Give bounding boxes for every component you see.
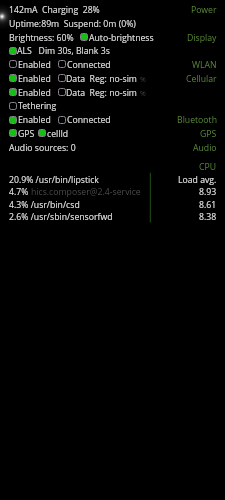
staticText: Brightness: 60% xyxy=(9,32,74,44)
button[interactable]: Auto-brightness xyxy=(80,33,88,41)
staticText: GPS xyxy=(18,128,35,140)
staticText: Auto-brightness xyxy=(89,32,154,44)
staticText: Data Reg: no-sim xyxy=(66,73,137,85)
button[interactable]: Bluetooth connected xyxy=(58,116,66,124)
staticText: 142mA Charging 28% xyxy=(9,4,100,16)
button[interactable]: cellId xyxy=(38,129,46,137)
staticText: Audio xyxy=(193,142,217,154)
staticText: 4.3% /usr/bin/csd xyxy=(9,199,80,211)
staticText: Data Reg: no-sim xyxy=(66,87,137,99)
staticText: Power xyxy=(191,4,217,16)
staticText: 4.7% xyxy=(9,186,29,198)
staticText: Uptime:89m Suspend: 0m (0%) xyxy=(9,18,136,30)
button[interactable]: Cellular 2 data xyxy=(58,88,66,96)
button[interactable]: Cellular 2 enabled xyxy=(9,88,17,96)
staticText: Enabled xyxy=(18,114,51,126)
staticText: Bluetooth xyxy=(177,114,217,126)
button[interactable]: GPS xyxy=(9,129,17,137)
staticText: ALS Dim 30s, Blank 3s xyxy=(17,45,110,57)
button[interactable]: Bluetooth enabled xyxy=(9,116,17,124)
staticText: CPU xyxy=(199,161,217,173)
staticText: % xyxy=(140,75,146,85)
staticText: Connected xyxy=(67,59,111,71)
staticText: 8.38 xyxy=(199,211,217,223)
button[interactable]: WLAN enabled xyxy=(9,60,17,68)
staticText: Cellular xyxy=(186,73,217,85)
staticText: Display xyxy=(187,32,217,44)
staticText: cellId xyxy=(47,128,69,140)
button[interactable]: ALS xyxy=(9,47,17,55)
staticText: % xyxy=(140,89,146,99)
button[interactable]: WLAN connected xyxy=(58,60,66,68)
staticText: WLAN xyxy=(192,59,217,71)
staticText: Enabled xyxy=(18,73,51,85)
staticText: 20.9% /usr/bin/lipstick xyxy=(9,174,99,186)
staticText: 8.61 xyxy=(199,199,217,211)
staticText: Connected xyxy=(67,114,111,126)
staticText: GPS xyxy=(200,128,217,140)
button[interactable]: Cellular enabled xyxy=(9,74,17,82)
button[interactable]: Cellular data xyxy=(58,74,66,82)
staticText: 2.6% /usr/sbin/sensorfwd xyxy=(9,211,113,223)
staticText: Enabled xyxy=(18,87,51,99)
staticText: hics.composer@2.4-service xyxy=(31,186,141,198)
staticText: Audio sources: 0 xyxy=(9,142,76,154)
button[interactable]: Tethering xyxy=(9,102,17,110)
staticText: 8.93 xyxy=(199,186,217,198)
staticText: Load avg. xyxy=(178,174,217,186)
staticText: Tethering xyxy=(18,100,57,112)
staticText: Enabled xyxy=(18,59,51,71)
